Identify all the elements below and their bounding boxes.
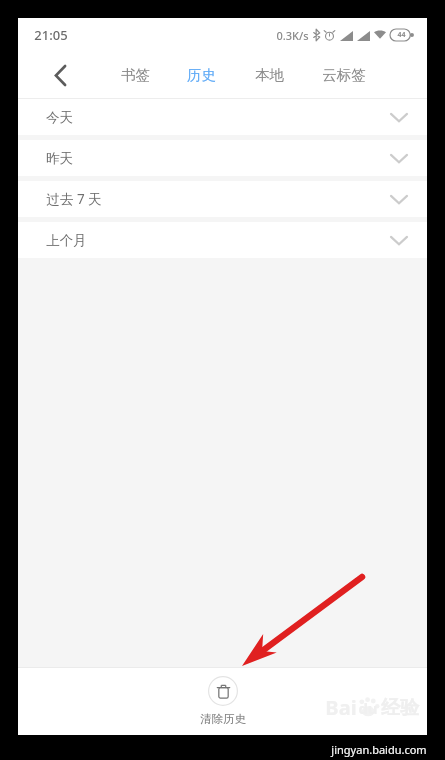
staticText: 书签: [121, 66, 150, 84]
staticText: 21:05: [34, 26, 68, 44]
staticText: 云标签: [322, 66, 366, 84]
staticText: 本地: [255, 66, 284, 84]
staticText: Bai: [325, 694, 357, 721]
button[interactable]: 上个月: [18, 222, 427, 258]
staticText: du: [358, 698, 378, 718]
button[interactable]: 本地: [234, 52, 304, 98]
button[interactable]: 书签: [102, 52, 168, 98]
button[interactable]: 清除历史: [188, 674, 258, 728]
staticText: 过去 7 天: [46, 190, 102, 208]
staticText: jingyan.baidu.com: [331, 742, 427, 757]
button[interactable]: Back: [38, 53, 82, 97]
staticText: 上个月: [46, 232, 87, 249]
staticText: 历史: [187, 66, 216, 84]
staticText: 昨天: [46, 150, 73, 167]
staticText: 0.3K/s: [276, 28, 309, 43]
staticText: 今天: [46, 109, 73, 126]
staticText: 44: [397, 30, 406, 40]
button[interactable]: 云标签: [304, 52, 384, 98]
button[interactable]: 昨天: [18, 140, 427, 176]
button[interactable]: 过去 7 天: [18, 181, 427, 217]
staticText: 经验: [381, 696, 419, 720]
button[interactable]: 今天: [18, 99, 427, 135]
staticText: 清除历史: [200, 712, 246, 726]
button[interactable]: 历史: [168, 52, 234, 98]
